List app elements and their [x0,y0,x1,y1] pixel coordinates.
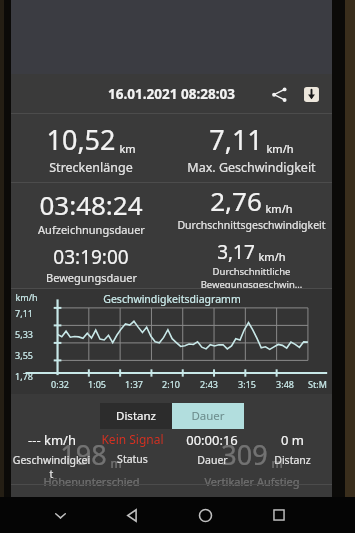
staticText: 3:48 [276,378,294,390]
staticText: Max. Geschwindigkeit [187,159,316,176]
staticText: 1:05 [88,378,106,390]
staticText: km/h [15,291,38,303]
staticText: Breite/Länge [218,516,286,530]
staticText: Bewegungsdauer [46,270,137,285]
staticText: Distanz [274,453,311,467]
staticText: Status [117,452,148,466]
staticText: Streckenlänge [49,159,133,176]
button[interactable]: Back [96,497,169,533]
staticText: km/h [258,249,286,264]
staticText: St:M [308,378,327,390]
staticText: 7,11 [209,121,263,158]
staticText: --- m [37,492,66,510]
staticText: Höhenunterschied [43,474,140,489]
staticText: m [271,455,283,471]
staticText: km [119,141,136,156]
staticText: ---,--- [237,492,266,510]
staticText: Distanz [116,408,156,424]
staticText: Kein Signal [101,431,164,447]
staticText: 00:00:16 [186,431,238,449]
staticText: 0:32 [51,378,69,390]
staticText: 10,52 [46,121,116,158]
staticText: 198 [60,436,107,473]
staticText: 03:48:24 [39,187,143,222]
staticText: --- km/h [28,431,76,449]
staticText: 5,33 [15,328,33,340]
staticText: Durchschnittsgeschwindigkeit [177,218,326,232]
staticText: 3,17 [217,239,255,265]
button[interactable]: Save [298,81,324,107]
staticText: 3,55 [15,349,33,361]
staticText: 16.01.2021 08:28:03 [108,85,235,103]
staticText: Vertikaler Aufstieg [204,474,300,489]
staticText: 0 m [281,431,304,449]
staticText: Durchschnittliche Bewegungsgeschwin… [171,265,332,288]
button[interactable]: Home [169,497,242,533]
staticText: Aufzeichnungsdauer [38,222,145,237]
staticText: Dauer [191,408,225,424]
staticText: m [110,455,122,471]
staticText: 1,78 [15,370,33,382]
staticText: 1:37 [125,378,143,390]
staticText: Satelliten [106,516,156,530]
staticText: Geschwindigkeitsdiagramm [103,292,241,306]
staticText: 2:43 [200,378,218,390]
button[interactable]: Distanz [100,403,172,429]
staticText: 3:15 [238,378,256,390]
staticText: 2,76 [210,183,262,218]
staticText: 309 [221,436,268,473]
staticText: km/h [266,141,294,156]
staticText: 7,11 [15,307,33,319]
button[interactable]: Recent apps [242,497,315,533]
staticText: Dauer [197,453,228,467]
button[interactable]: Share [266,81,292,107]
staticText: 0/21 [117,492,145,510]
staticText: Höhe [37,516,65,530]
staticText: km/h [265,201,293,216]
staticText: Geschwindigkeit [11,453,92,481]
staticText: 2:10 [162,378,180,390]
staticText: 03:19:00 [53,244,129,270]
button[interactable]: Dauer [172,403,244,429]
button[interactable]: Hide keyboard [24,497,96,533]
